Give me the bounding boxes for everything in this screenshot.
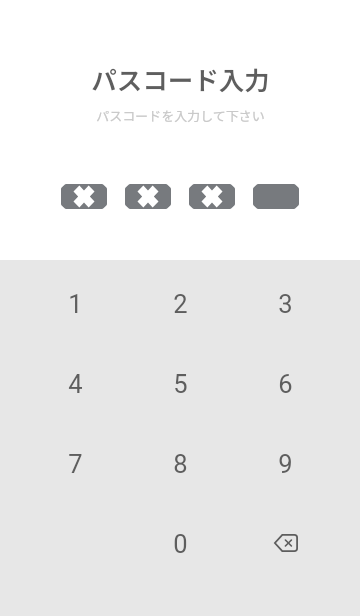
staticText: 3 (278, 289, 293, 319)
staticText: 8 (173, 449, 188, 479)
staticText: 6 (278, 369, 293, 399)
button[interactable]: 7 (22, 424, 128, 504)
staticText: 5 (173, 369, 188, 399)
staticText: 2 (173, 289, 188, 319)
other: Delete (263, 521, 309, 567)
button[interactable]: 3 (233, 264, 338, 344)
button[interactable]: 0 (128, 504, 233, 584)
staticText: 0 (173, 529, 188, 559)
staticText: 7 (68, 449, 83, 479)
staticText: 9 (278, 449, 293, 479)
button[interactable]: 6 (233, 344, 338, 424)
staticText: パスコード入力 (91, 60, 270, 97)
staticText: 4 (68, 369, 83, 399)
button[interactable]: 4 (22, 344, 128, 424)
button[interactable]: 8 (128, 424, 233, 504)
button[interactable]: 2 (128, 264, 233, 344)
button[interactable]: 5 (128, 344, 233, 424)
button[interactable]: 1 (22, 264, 128, 344)
button[interactable]: 9 (233, 424, 338, 504)
staticText: 1 (68, 289, 83, 319)
button[interactable]: Delete (233, 504, 338, 584)
staticText: パスコードを入力して下さい (96, 106, 265, 125)
